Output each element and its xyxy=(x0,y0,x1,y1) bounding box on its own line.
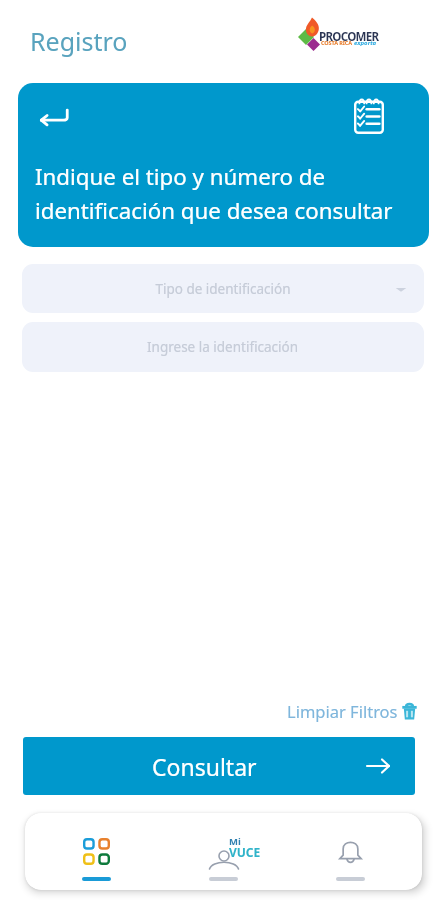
button[interactable]: Tipo de identificación xyxy=(22,264,424,313)
staticText: Consultar xyxy=(152,751,257,782)
staticText: Mi xyxy=(229,835,241,848)
staticText: Ingrese la identificación xyxy=(147,338,299,356)
button[interactable]: Consultar xyxy=(23,737,415,795)
button[interactable]: Mi VUCE xyxy=(160,813,287,890)
staticText: Registro xyxy=(30,24,128,58)
staticText: COSTA RICA xyxy=(321,39,354,46)
button[interactable]: Ingrese la identificación xyxy=(22,322,424,372)
staticText: Tipo de identificación xyxy=(155,280,291,298)
button[interactable]: Registros xyxy=(350,95,388,135)
staticText: PROCOMER xyxy=(319,29,379,45)
button[interactable]: Notificaciones xyxy=(287,813,414,890)
staticText: exporta xyxy=(354,39,377,47)
button[interactable]: Limpiar Filtros xyxy=(287,700,417,722)
staticText: Limpiar Filtros xyxy=(287,700,398,722)
button[interactable]: Inicio xyxy=(33,813,160,890)
staticText: VUCE xyxy=(229,844,261,860)
staticText: Indique el tipo y número de identificaci… xyxy=(35,161,393,225)
button[interactable]: Volver xyxy=(33,96,77,140)
